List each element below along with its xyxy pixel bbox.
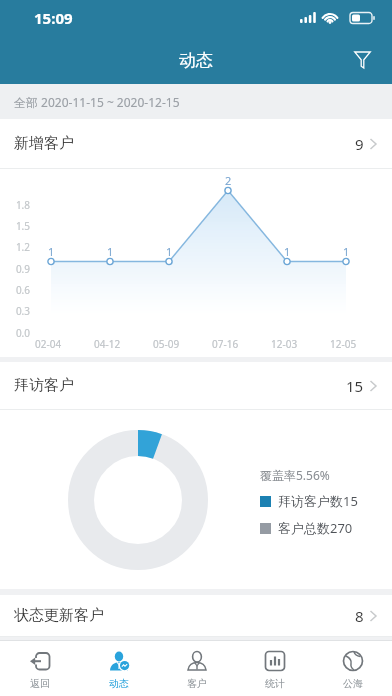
button[interactable] <box>346 44 378 76</box>
staticText: 1.2 <box>10 240 30 254</box>
staticText: 客户总数270 <box>278 519 353 537</box>
staticText: 新增客户 <box>14 134 74 153</box>
button[interactable]: 全部 2020-11-15 ~ 2020-12-15 <box>0 84 392 119</box>
staticText: 公海 <box>343 677 363 690</box>
button[interactable]: 新增客户 <box>14 119 378 168</box>
button[interactable]: 返回 <box>0 641 79 696</box>
staticText: 1.5 <box>10 219 30 233</box>
staticText: 02-04 <box>35 337 62 351</box>
button[interactable]: 状态更新客户 <box>14 595 378 636</box>
staticText: 1.8 <box>10 198 30 212</box>
button[interactable]: 统计 <box>236 641 314 696</box>
staticText: 9 <box>355 134 364 154</box>
button[interactable]: 动态 <box>79 641 158 696</box>
staticText: 动态 <box>179 50 213 71</box>
staticText: 1 <box>48 244 55 259</box>
staticText: 0.6 <box>10 283 30 297</box>
staticText: 全部 2020-11-15 ~ 2020-12-15 <box>14 94 180 110</box>
staticText: 0.0 <box>10 326 30 340</box>
staticText: 拜访客户 <box>14 376 74 395</box>
staticText: 2 <box>225 173 232 188</box>
staticText: 07-16 <box>212 337 239 351</box>
staticText: 覆盖率5.56% <box>260 467 330 483</box>
staticText: 12-03 <box>271 337 298 351</box>
staticText: 12-05 <box>330 337 357 351</box>
button[interactable]: 公海 <box>314 641 392 696</box>
staticText: 8 <box>355 606 364 626</box>
staticText: 0.3 <box>10 304 30 318</box>
staticText: 15:09 <box>34 8 73 28</box>
staticText: 1 <box>284 244 291 259</box>
staticText: 客户 <box>187 677 207 690</box>
staticText: 动态 <box>109 677 129 690</box>
staticText: 返回 <box>30 677 50 690</box>
button[interactable]: 客户 <box>158 641 236 696</box>
staticText: 05-09 <box>153 337 180 351</box>
staticText: 1 <box>107 244 114 259</box>
staticText: 0.9 <box>10 262 30 276</box>
staticText: 1 <box>166 244 173 259</box>
staticText: 1 <box>343 244 350 259</box>
staticText: 15 <box>346 376 364 396</box>
staticText: 拜访客户数15 <box>278 492 358 510</box>
staticText: 04-12 <box>94 337 121 351</box>
staticText: 状态更新客户 <box>14 606 104 625</box>
staticText: 统计 <box>265 677 285 690</box>
button[interactable]: 拜访客户 <box>14 362 378 409</box>
